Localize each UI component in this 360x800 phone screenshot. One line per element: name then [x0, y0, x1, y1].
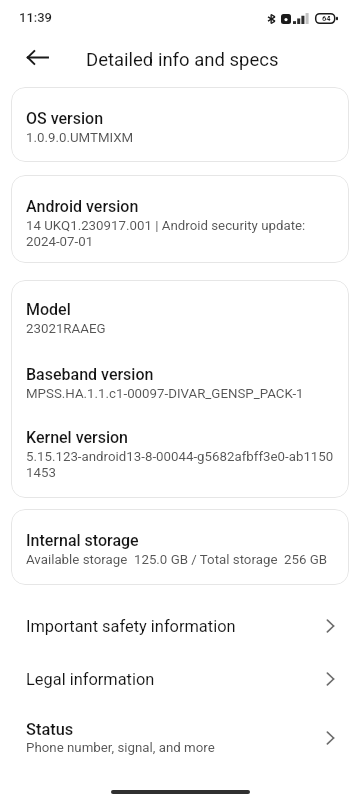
staticText: Model: [26, 300, 71, 319]
staticText: MPSS.HA.1.1.c1-00097-DIVAR_GENSP_PACK-1: [26, 386, 304, 402]
button[interactable]: Model: [11, 280, 349, 498]
button[interactable]: OS version: [11, 87, 349, 162]
staticText: 23021RAAEG: [26, 321, 106, 337]
button[interactable]: Legal information: [0, 664, 360, 694]
staticText: 5.15.123-android13-8-00044-g5682afbff3e0…: [26, 449, 334, 481]
staticText: 14 UKQ1.230917.001 | Android security up…: [26, 218, 306, 250]
staticText: 11:39: [19, 10, 52, 25]
staticText: 64: [322, 14, 331, 23]
button[interactable]: Status: [0, 717, 360, 761]
button[interactable]: Android version: [11, 175, 349, 263]
button[interactable]: Back: [17, 37, 57, 77]
staticText: Internal storage: [26, 531, 139, 550]
button[interactable]: Important safety information: [0, 611, 360, 641]
staticText: Android version: [26, 197, 139, 216]
staticText: Important safety information: [26, 617, 322, 636]
button[interactable]: Internal storage: [11, 509, 349, 585]
staticText: Available storage 125.0 GB / Total stora…: [26, 552, 328, 568]
staticText: Detailed info and specs: [86, 49, 279, 71]
staticText: Legal information: [26, 670, 322, 689]
staticText: 1.0.9.0.UMTMIXM: [26, 130, 134, 146]
staticText: Phone number, signal, and more: [26, 740, 215, 756]
staticText: Status: [26, 720, 74, 739]
staticText: OS version: [26, 109, 104, 128]
staticText: Kernel version: [26, 428, 129, 447]
staticText: Baseband version: [26, 365, 154, 384]
